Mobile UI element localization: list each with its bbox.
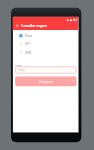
button[interactable] — [15, 66, 76, 73]
button[interactable]: Back — [14, 21, 21, 29]
button[interactable] — [13, 48, 79, 56]
button[interactable] — [15, 77, 76, 87]
button[interactable] — [13, 40, 79, 48]
button[interactable] — [13, 32, 79, 40]
